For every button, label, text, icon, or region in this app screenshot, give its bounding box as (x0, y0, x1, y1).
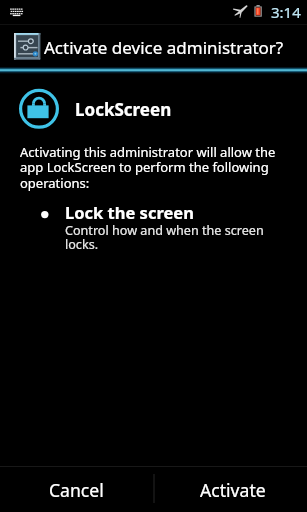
button[interactable]: Cancel (0, 467, 153, 512)
staticText: Control how and when the screen locks. (65, 222, 271, 252)
button[interactable]: Activate (153, 467, 307, 512)
staticText: Activate device administrator? (44, 36, 284, 59)
staticText: Cancel (49, 478, 104, 502)
staticText: Activating this administrator will allow… (20, 143, 284, 192)
staticText: Lock the screen (65, 201, 194, 223)
staticText: 3:14 (271, 2, 301, 22)
button[interactable]: Settings (14, 33, 41, 60)
staticText: Activate (200, 478, 266, 502)
staticText: LockScreen (75, 98, 172, 121)
other: Airplane mode (232, 4, 249, 20)
